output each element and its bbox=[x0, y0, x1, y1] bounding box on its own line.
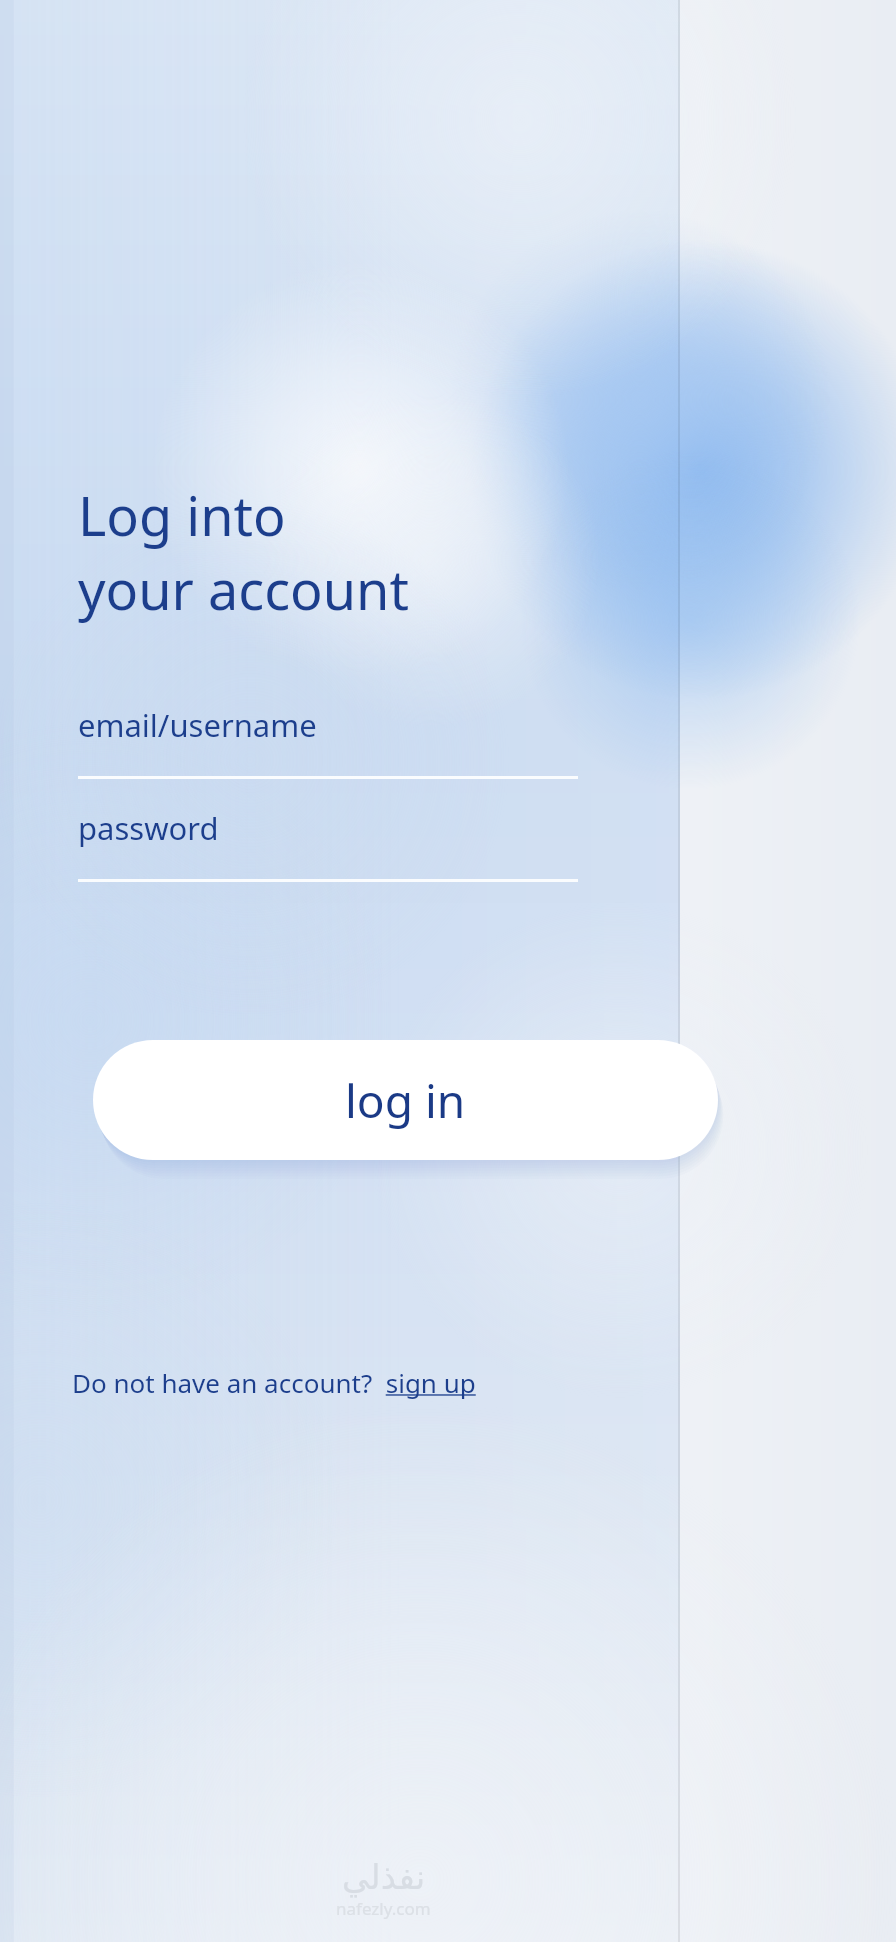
button[interactable]: email/username bbox=[78, 704, 578, 779]
staticText: نفذلي bbox=[342, 1857, 426, 1897]
button[interactable]: log in bbox=[93, 1040, 718, 1160]
staticText: email/username bbox=[78, 704, 317, 746]
button[interactable]: Do not have an account? sign up bbox=[72, 1365, 476, 1400]
button[interactable]: password bbox=[78, 807, 578, 882]
staticText: Do not have an account? sign up bbox=[72, 1365, 476, 1400]
staticText: password bbox=[78, 807, 219, 849]
staticText: Log into bbox=[78, 478, 286, 552]
staticText: your account bbox=[78, 552, 409, 626]
staticText: log in bbox=[345, 1069, 466, 1132]
staticText: nafezly.com bbox=[336, 1897, 431, 1920]
